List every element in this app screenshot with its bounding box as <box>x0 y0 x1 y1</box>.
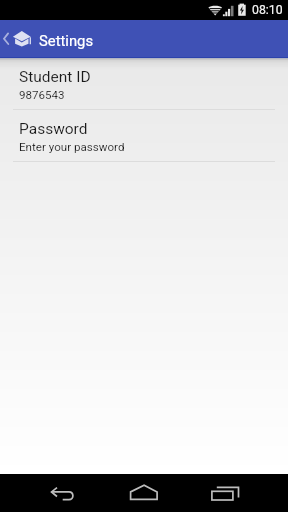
button[interactable]: Navigate up <box>0 20 13 58</box>
staticText: Student ID <box>19 68 91 86</box>
staticText: 08:10 <box>252 3 283 17</box>
button[interactable]: Password <box>0 110 288 162</box>
button[interactable]: Recent apps <box>192 474 288 512</box>
button[interactable]: Back <box>0 474 96 512</box>
staticText: 9876543 <box>19 88 65 102</box>
button[interactable]: Home <box>96 474 192 512</box>
button[interactable]: Student ID <box>0 58 288 110</box>
staticText: Enter your password <box>19 140 125 154</box>
staticText: Password <box>19 120 88 138</box>
staticText: Settings <box>39 32 94 49</box>
